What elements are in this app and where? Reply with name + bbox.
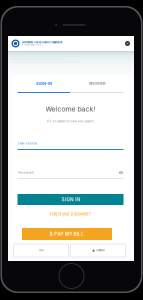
button[interactable]: ▲ [70, 244, 125, 257]
staticText: Northwest Valley Health Cooperative [22, 41, 62, 44]
staticText: ▲ [92, 249, 95, 252]
staticText: Android [96, 249, 104, 252]
staticText: Welcome back! [45, 105, 95, 113]
staticText: SIGN-IN [36, 81, 52, 86]
staticText: a caring health center [22, 44, 42, 46]
button[interactable]: SIGN-IN [17, 75, 70, 92]
staticText: It's so great to see you again. [46, 119, 94, 123]
button[interactable]: $ PAY MY BILL [22, 228, 112, 240]
button[interactable]: Forgot your password? [40, 210, 100, 218]
button[interactable]: Close [124, 40, 131, 47]
staticText: Email Address [17, 142, 36, 145]
staticText: Forgot your password? [50, 211, 91, 216]
button[interactable]: SIGN IN [17, 194, 123, 205]
button[interactable] [13, 244, 68, 257]
staticText: SIGN IN [61, 197, 79, 202]
staticText: $ PAY MY BILL [50, 231, 84, 237]
staticText: Password [17, 170, 33, 175]
staticText: iOS [39, 249, 44, 252]
staticText: REGISTER [89, 81, 105, 86]
button[interactable]: REGISTER [70, 75, 123, 92]
staticText: ✕ [126, 41, 129, 45]
